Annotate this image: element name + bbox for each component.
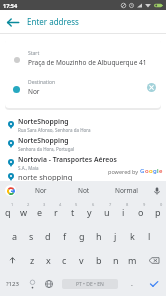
staticText: 6 [92,202,95,207]
staticText: NorteShopping [18,136,69,145]
staticText: d [45,230,51,242]
staticText: n [113,254,119,266]
staticText: w [20,206,28,218]
staticText: 5 [75,202,78,207]
button[interactable]: e [32,200,48,224]
staticText: e [37,206,43,218]
staticText: j [114,230,117,242]
staticText: NorteShopping [18,117,69,126]
staticText: f [63,230,67,242]
staticText: v [79,254,84,266]
staticText: Rua Sara Afonso, Senhora da Hora [18,127,91,133]
staticText: r [54,206,58,218]
staticText: b [96,254,102,266]
button[interactable]: g [73,224,90,248]
staticText: g [153,167,157,175]
button[interactable]: Back [0,10,25,33]
button[interactable]: Nor [20,181,62,200]
button[interactable]: v [73,248,90,272]
staticText: 8 [126,202,129,207]
staticText: o [149,167,153,175]
staticText: S.A., Maia [18,165,39,171]
button[interactable]: z [24,248,40,272]
button[interactable]: Clear [141,77,161,97]
staticText: y [87,206,92,218]
button[interactable]: p [149,200,166,224]
staticText: . [131,279,133,289]
button[interactable]: Change keyboard language [40,272,58,296]
button[interactable]: Shift [0,248,24,272]
button[interactable]: k [124,224,141,248]
staticText: 17:54 [3,2,18,9]
staticText: powered by [108,168,140,175]
button[interactable]: Enter [142,272,166,296]
button[interactable]: r [48,200,64,224]
button[interactable]: Destination [5,76,161,98]
button[interactable]: ?123 [0,272,24,296]
staticText: i [122,206,125,218]
button[interactable]: Normal [105,181,148,200]
staticText: s [29,230,34,242]
button[interactable]: u [98,200,115,224]
button[interactable]: m [124,248,141,272]
staticText: 9 [143,202,146,207]
button[interactable]: t [64,200,81,224]
staticText: c [62,254,67,266]
button[interactable]: j [107,224,124,248]
staticText: Nor [28,87,40,96]
button[interactable]: NorteShopping [0,134,166,153]
staticText: p [155,206,161,218]
button[interactable]: c [56,248,73,272]
button[interactable]: i [115,200,132,224]
staticText: Nor [35,186,47,195]
staticText: u [104,206,110,218]
staticText: Destination [28,79,56,86]
button[interactable]: norte shopping [0,172,166,181]
staticText: o [145,167,149,175]
staticText: o [138,206,144,218]
button[interactable]: Not [62,181,105,200]
staticText: ?123 [6,280,19,288]
button[interactable]: a [7,224,23,248]
button[interactable]: Google [0,181,20,200]
button[interactable]: PT • DE • EN [62,279,118,289]
staticText: z [30,254,35,266]
button[interactable]: NorteShopping [0,115,166,134]
staticText: e [159,167,163,175]
button[interactable]: . [122,272,142,296]
staticText: 7 [109,202,112,207]
staticText: t [71,206,75,218]
staticText: x [46,254,51,266]
button[interactable]: o [132,200,149,224]
staticText: G [140,167,145,175]
staticText: l [157,167,159,175]
button[interactable]: Emoji and comma [24,272,40,296]
staticText: 0 [160,202,163,207]
staticText: m [128,254,137,266]
button[interactable]: q [0,200,16,224]
button[interactable]: s [23,224,39,248]
staticText: Normal [115,186,138,195]
button[interactable]: d [39,224,56,248]
button[interactable]: Voice input [148,181,166,200]
staticText: k [130,230,135,242]
button[interactable]: x [40,248,56,272]
button[interactable]: y [81,200,98,224]
button[interactable]: Backspace [141,248,166,272]
staticText: norte shopping [18,172,73,181]
button[interactable]: l [141,224,158,248]
staticText: Nortovia - Transportes Aéreos [18,155,117,164]
button[interactable]: h [90,224,107,248]
staticText: 1 [11,202,14,207]
staticText: Not [78,186,90,195]
button[interactable]: b [90,248,107,272]
button[interactable]: Nortovia - Transportes Aéreos [0,153,166,172]
staticText: l [148,230,151,242]
button[interactable]: w [16,200,32,224]
button[interactable]: n [107,248,124,272]
staticText: a [12,230,18,242]
staticText: 4 [59,202,62,207]
button[interactable]: Start [5,47,161,69]
staticText: Senhora da Hora, Portugal [18,146,75,152]
button[interactable]: f [56,224,73,248]
